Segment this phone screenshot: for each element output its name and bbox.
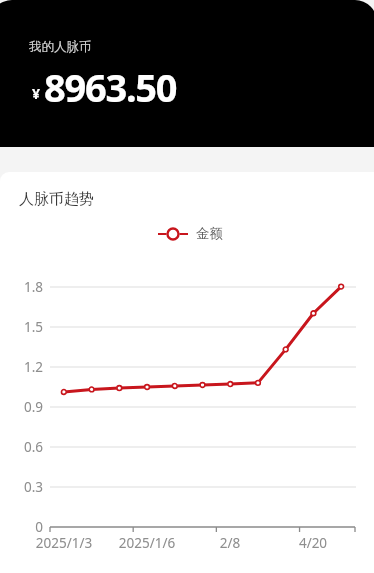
staticText: 1.8 <box>1 278 43 296</box>
staticText: 2025/1/6 <box>107 534 187 552</box>
staticText: ¥ <box>32 84 41 103</box>
button[interactable]: 我的人脉币 <box>0 0 374 147</box>
staticText: 金额 <box>196 225 223 242</box>
button[interactable]: 金额 series <box>158 225 223 242</box>
staticText: 0 <box>1 518 43 536</box>
staticText: 2/8 <box>190 534 270 552</box>
staticText: 0.6 <box>1 438 43 456</box>
staticText: 2025/1/3 <box>24 534 104 552</box>
staticText: 8963.50 <box>44 61 177 113</box>
staticText: 0.3 <box>1 478 43 496</box>
staticText: 0.9 <box>1 398 43 416</box>
staticText: 1.5 <box>1 318 43 336</box>
staticText: 我的人脉币 <box>29 39 92 55</box>
staticText: 人脉币趋势 <box>19 190 94 209</box>
staticText: 4/20 <box>273 534 353 552</box>
staticText: 1.2 <box>1 358 43 376</box>
